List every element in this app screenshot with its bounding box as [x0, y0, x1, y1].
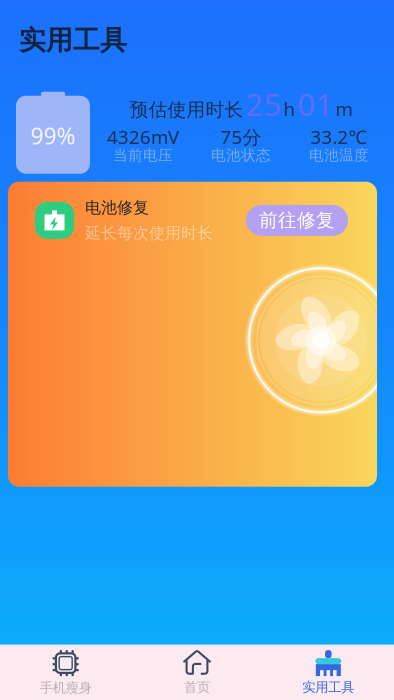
staticText: 首页 [184, 679, 210, 695]
button[interactable]: 手机瘦身 [0, 645, 131, 700]
staticText: 99% [30, 121, 75, 151]
staticText: 实用工具 [302, 679, 354, 695]
staticText: 前往修复 [259, 209, 335, 232]
staticText: 电池修复 [85, 198, 149, 217]
staticText: 4326mV [107, 124, 179, 149]
button[interactable]: 首页 [131, 645, 263, 699]
staticText: 预估使用时长 [129, 98, 243, 121]
staticText: 电池状态 [211, 146, 271, 164]
button[interactable]: 前往修复 [246, 205, 348, 236]
staticText: 电池温度 [309, 146, 369, 164]
staticText: 01 [297, 84, 333, 124]
staticText: m [335, 96, 352, 121]
staticText: h [283, 96, 295, 121]
staticText: 实用工具 [19, 24, 127, 57]
staticText: 延长每次使用时长 [85, 223, 213, 243]
staticText: 75分 [220, 124, 261, 149]
button[interactable]: 实用工具 [263, 645, 394, 699]
staticText: 当前电压 [113, 146, 173, 164]
staticText: 25 [245, 84, 281, 124]
staticText: 33.2℃ [310, 124, 367, 149]
staticText: 手机瘦身 [40, 680, 92, 696]
